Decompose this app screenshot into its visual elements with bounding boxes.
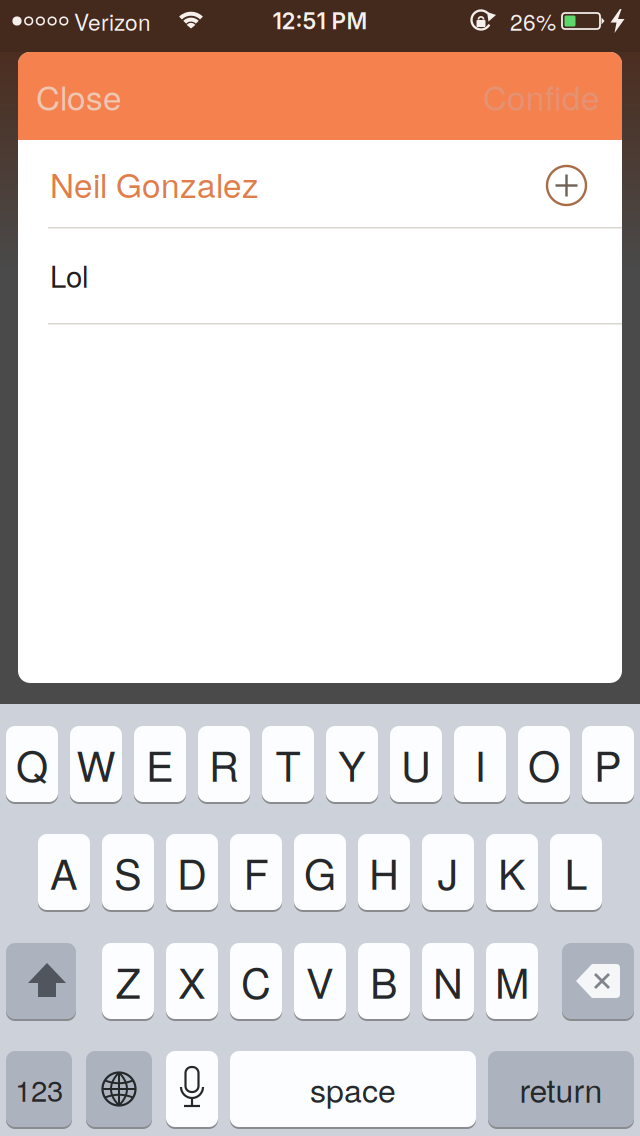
- button[interactable]: Y: [326, 726, 378, 804]
- staticText: T: [275, 734, 300, 794]
- staticText: S: [114, 842, 142, 902]
- staticText: G: [304, 842, 336, 902]
- button[interactable]: H: [358, 834, 410, 912]
- button[interactable]: P: [582, 726, 634, 804]
- button[interactable]: return: [488, 1051, 634, 1129]
- staticText: R: [209, 734, 239, 794]
- button[interactable]: E: [134, 726, 186, 804]
- staticText: F: [243, 842, 268, 902]
- staticText: C: [241, 951, 271, 1011]
- staticText: P: [594, 734, 622, 794]
- button[interactable]: Shift: [6, 943, 76, 1021]
- staticText: E: [146, 734, 174, 794]
- staticText: M: [495, 951, 529, 1011]
- button[interactable]: L: [550, 834, 602, 912]
- button[interactable]: R: [198, 726, 250, 804]
- staticText: Verizon: [74, 5, 151, 37]
- staticText: Close: [36, 72, 122, 120]
- button[interactable]: J: [422, 834, 474, 912]
- staticText: Q: [16, 734, 48, 794]
- button[interactable]: O: [518, 726, 570, 804]
- staticText: U: [401, 734, 431, 794]
- staticText: W: [76, 734, 115, 794]
- button[interactable]: T: [262, 726, 314, 804]
- button[interactable]: space: [230, 1051, 476, 1129]
- staticText: X: [178, 951, 206, 1011]
- button[interactable]: C: [230, 943, 282, 1021]
- button[interactable]: Dictate: [166, 1051, 218, 1129]
- staticText: B: [370, 951, 398, 1011]
- staticText: 26%: [510, 5, 556, 37]
- button[interactable]: D: [166, 834, 218, 912]
- button[interactable]: Delete: [562, 943, 634, 1021]
- button[interactable]: F: [230, 834, 282, 912]
- button[interactable]: V: [294, 943, 346, 1021]
- staticText: Confide: [483, 72, 600, 120]
- staticText: N: [433, 951, 463, 1011]
- staticText: Y: [338, 734, 366, 794]
- staticText: I: [474, 734, 485, 794]
- button[interactable]: B: [358, 943, 410, 1021]
- staticText: 123: [15, 1068, 63, 1110]
- staticText: Z: [115, 951, 140, 1011]
- staticText: 12:51 PM: [272, 7, 367, 35]
- staticText: V: [306, 951, 334, 1011]
- staticText: J: [437, 842, 458, 902]
- button[interactable]: Z: [102, 943, 154, 1021]
- staticText: D: [177, 842, 207, 902]
- staticText: A: [50, 842, 78, 902]
- button[interactable]: M: [486, 943, 538, 1021]
- button[interactable]: I: [454, 726, 506, 804]
- staticText: L: [564, 842, 587, 902]
- button[interactable]: X: [166, 943, 218, 1021]
- button[interactable]: Q: [6, 726, 58, 804]
- button[interactable]: Add contact: [546, 165, 587, 206]
- staticText: K: [498, 842, 526, 902]
- staticText: return: [519, 1066, 602, 1112]
- button[interactable]: S: [102, 834, 154, 912]
- staticText: Lol: [50, 254, 89, 296]
- button[interactable]: K: [486, 834, 538, 912]
- button[interactable]: G: [294, 834, 346, 912]
- button[interactable]: N: [422, 943, 474, 1021]
- staticText: Neil Gonzalez: [50, 160, 259, 207]
- button[interactable]: Confide: [400, 52, 600, 140]
- button[interactable]: Numbers: [6, 1051, 72, 1129]
- button[interactable]: A: [38, 834, 90, 912]
- button[interactable]: Close: [36, 52, 186, 140]
- staticText: space: [310, 1066, 396, 1112]
- button[interactable]: W: [70, 726, 122, 804]
- button[interactable]: Next keyboard: [86, 1051, 152, 1129]
- staticText: O: [528, 734, 560, 794]
- button[interactable]: U: [390, 726, 442, 804]
- staticText: H: [369, 842, 399, 902]
